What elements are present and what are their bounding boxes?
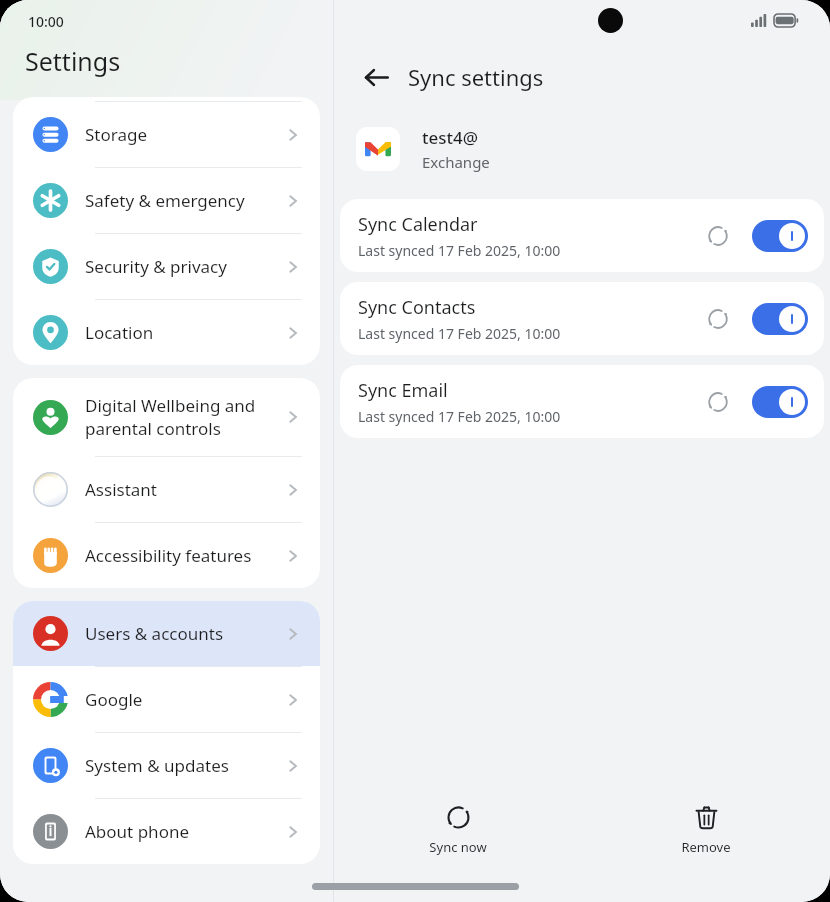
button[interactable]: Sync Email	[340, 365, 824, 438]
staticText: Last synced 17 Feb 2025, 10:00	[358, 407, 561, 426]
staticText: 10:00	[28, 12, 64, 31]
staticText: Assistant	[85, 478, 284, 501]
button[interactable]: Sync Sync Contacts	[700, 301, 736, 337]
button[interactable]: Sync now	[334, 798, 582, 862]
button[interactable]: Back	[356, 57, 396, 97]
button[interactable]: test4@	[334, 122, 830, 176]
staticText: Safety & emergency	[85, 189, 284, 212]
staticText: Last synced 17 Feb 2025, 10:00	[358, 241, 561, 260]
button[interactable]: Accessibility features	[13, 523, 320, 588]
staticText: Security & privacy	[85, 255, 284, 278]
staticText: Remove	[681, 838, 731, 856]
staticText: test4@	[422, 126, 479, 149]
button[interactable]: Toggle	[752, 386, 808, 418]
button[interactable]: Toggle	[752, 303, 808, 335]
staticText: Settings	[25, 44, 121, 78]
staticText: Digital Wellbeing and parental controls	[85, 394, 284, 440]
staticText: Users & accounts	[85, 622, 284, 645]
staticText: Sync now	[429, 838, 487, 856]
staticText: Sync Email	[358, 378, 448, 403]
button[interactable]: Location	[13, 300, 320, 365]
button[interactable]: Sync Sync Calendar	[700, 218, 736, 254]
staticText: Sync settings	[408, 62, 544, 92]
button[interactable]: Google	[13, 667, 320, 732]
staticText: About phone	[85, 820, 284, 843]
button[interactable]: Sync Contacts	[340, 282, 824, 355]
button[interactable]: Sync Sync Email	[700, 384, 736, 420]
button[interactable]: About phone	[13, 799, 320, 864]
staticText: Accessibility features	[85, 544, 284, 567]
button[interactable]: Sync Calendar	[340, 199, 824, 272]
button[interactable]: Users & accounts	[13, 601, 320, 666]
staticText: Storage	[85, 123, 284, 146]
staticText: Location	[85, 321, 284, 344]
button[interactable]: Digital Wellbeing and parental controls	[13, 378, 320, 456]
staticText: Last synced 17 Feb 2025, 10:00	[358, 324, 561, 343]
button[interactable]: Toggle	[752, 220, 808, 252]
staticText: Google	[85, 688, 284, 711]
button[interactable]: Safety & emergency	[13, 168, 320, 233]
staticText: System & updates	[85, 754, 284, 777]
button[interactable]: System & updates	[13, 733, 320, 798]
staticText: Exchange	[422, 152, 490, 172]
button[interactable]: Remove	[582, 798, 830, 862]
button[interactable]: Security & privacy	[13, 234, 320, 299]
button[interactable]: Assistant	[13, 457, 320, 522]
button[interactable]: Storage	[13, 102, 320, 167]
staticText: Sync Contacts	[358, 295, 476, 320]
staticText: Sync Calendar	[358, 212, 478, 237]
